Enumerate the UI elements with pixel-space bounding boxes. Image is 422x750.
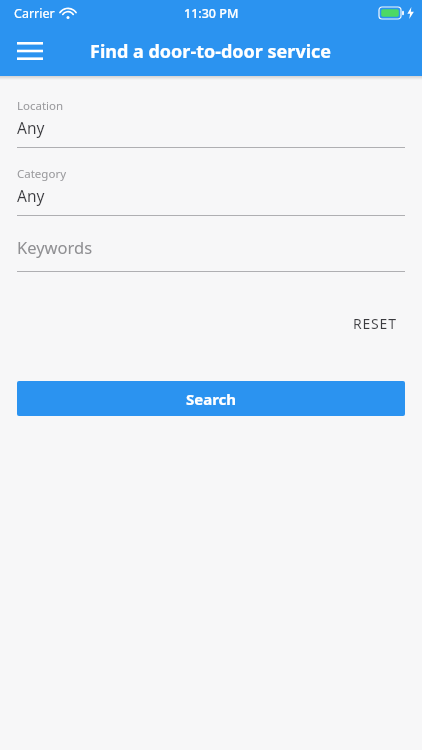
button[interactable]: Open navigation menu: [8, 29, 52, 73]
staticText: Location: [17, 98, 64, 114]
staticText: RESET: [353, 314, 397, 333]
staticText: Keywords: [17, 236, 93, 258]
button[interactable]: Keywords: [17, 234, 405, 272]
staticText: Find a door-to-door service: [90, 39, 332, 64]
button[interactable]: RESET: [345, 308, 405, 339]
staticText: Search: [186, 389, 237, 409]
staticText: Carrier: [14, 5, 55, 22]
button[interactable]: Category: [17, 166, 405, 216]
button[interactable]: Search: [17, 381, 405, 416]
staticText: Any: [17, 185, 45, 206]
staticText: Category: [17, 166, 67, 182]
button[interactable]: Location: [17, 98, 405, 148]
staticText: Any: [17, 117, 45, 138]
staticText: 11:30 PM: [184, 5, 239, 22]
